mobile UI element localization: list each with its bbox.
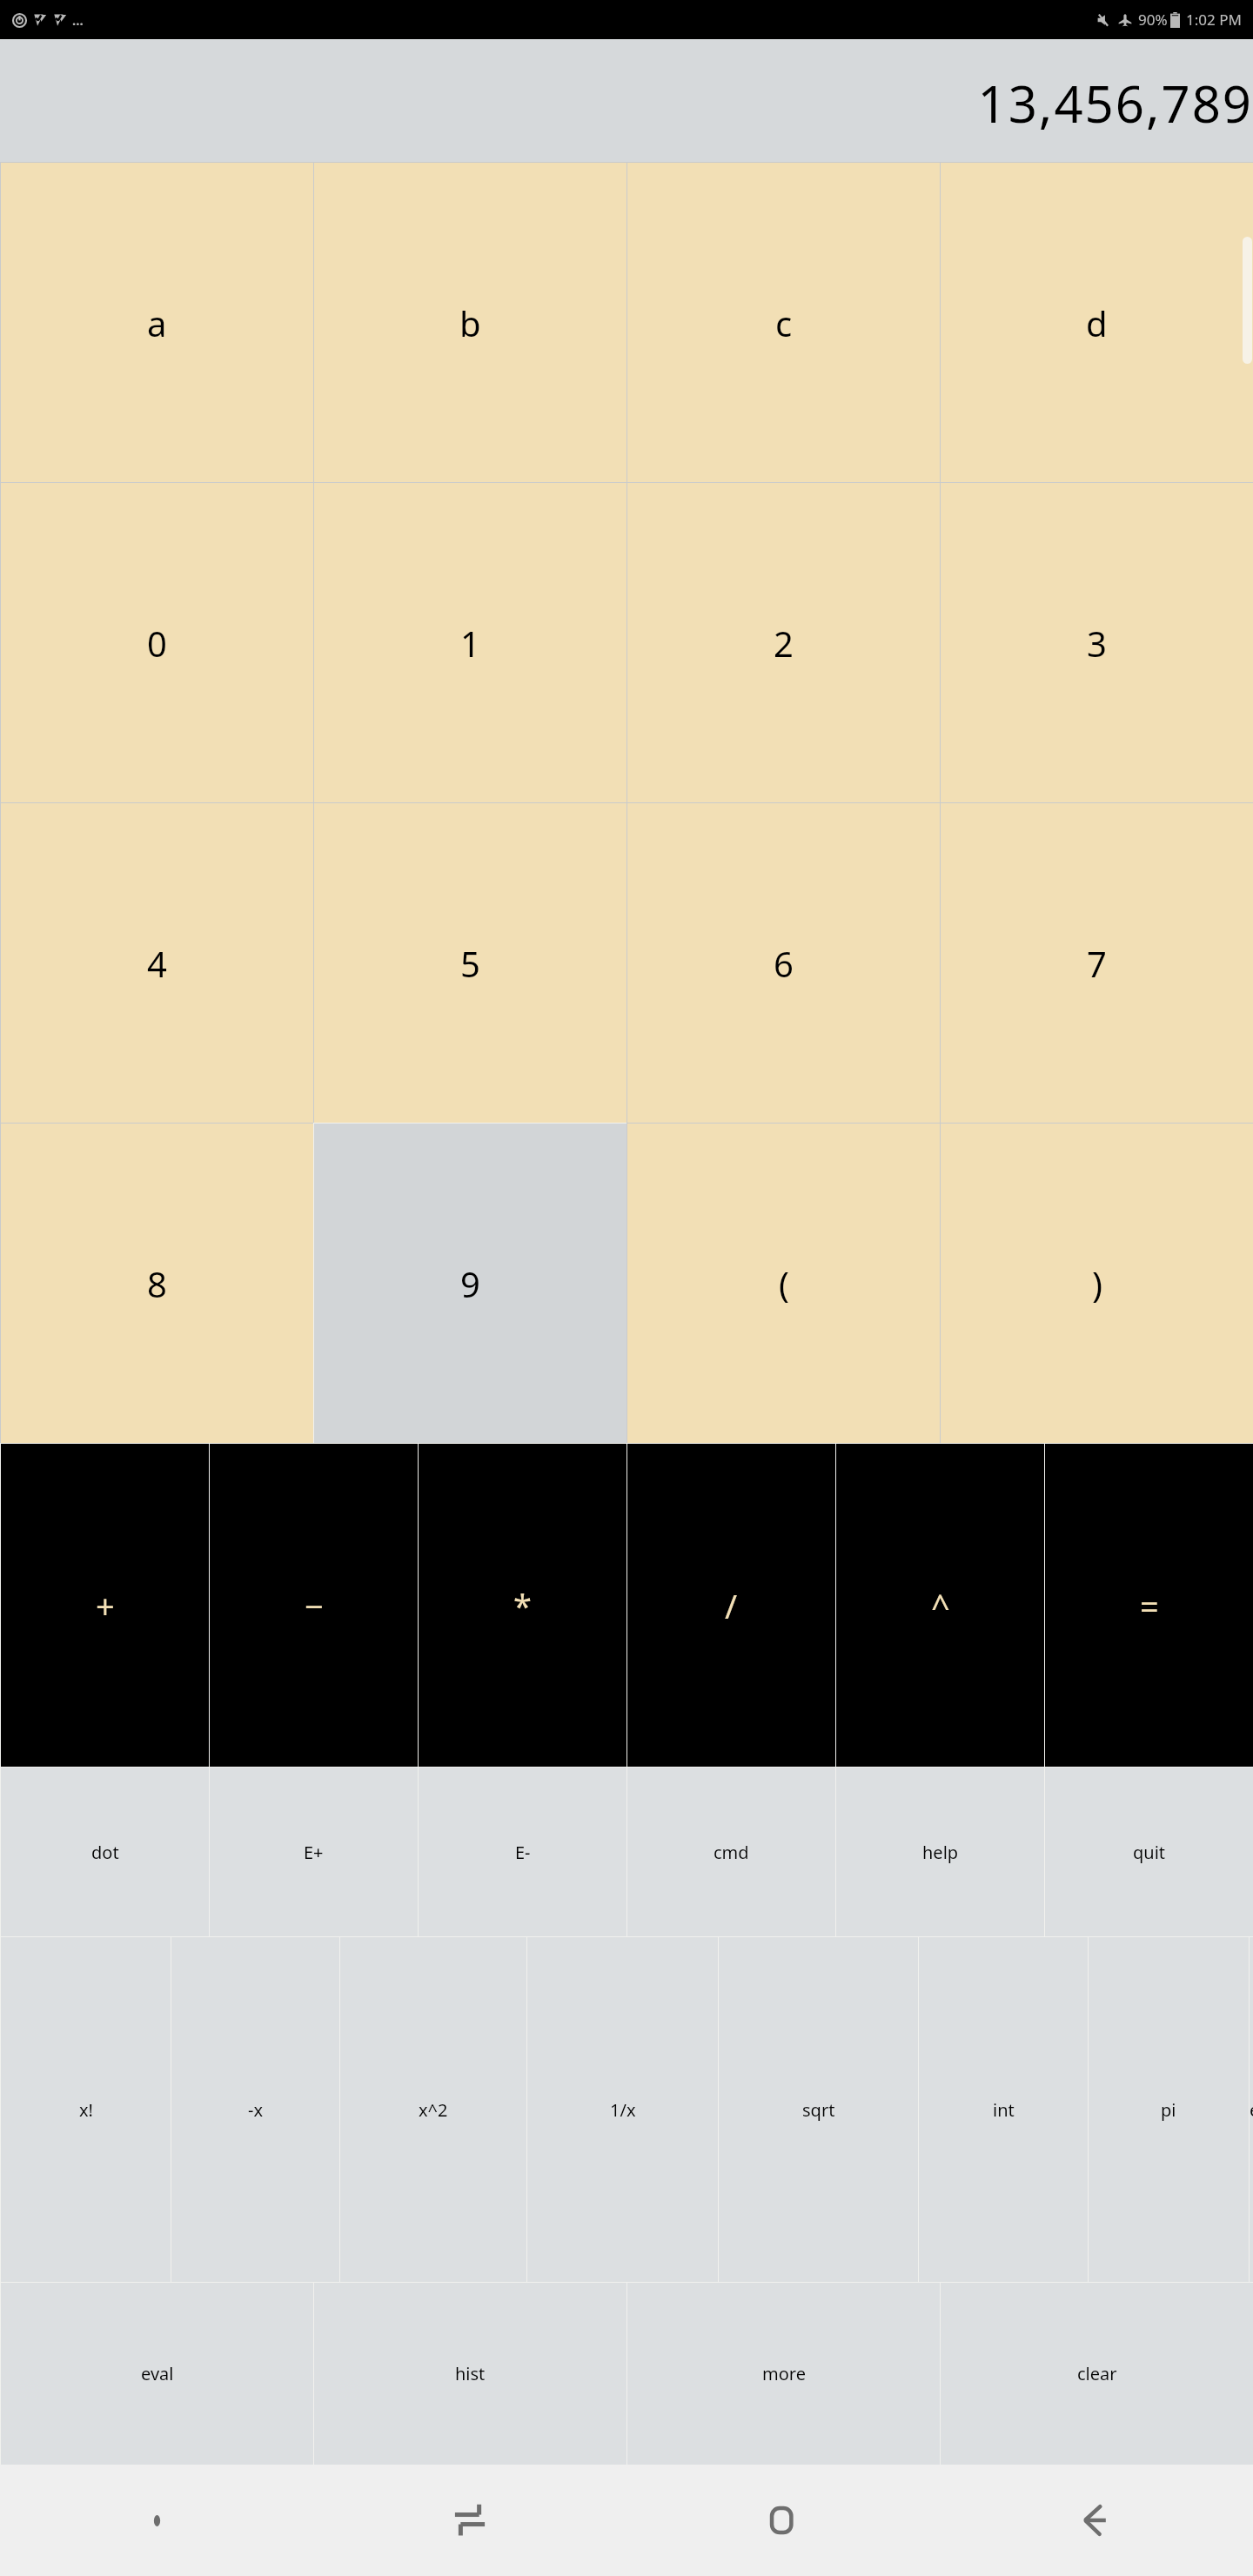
button[interactable]: * [419, 1444, 626, 1767]
button[interactable]: help [836, 1768, 1044, 1936]
staticText: more [762, 2362, 806, 2385]
button[interactable]: e [1250, 1937, 1253, 2282]
staticText: clear [1077, 2362, 1117, 2385]
staticText: 1 [460, 620, 480, 667]
button[interactable]: − [210, 1444, 418, 1767]
staticText: 13,456,789 [977, 69, 1253, 138]
staticText: 90% [1138, 10, 1168, 30]
staticText: help [922, 1841, 959, 1864]
button[interactable]: ( [627, 1124, 940, 1443]
staticText: ^ [931, 1583, 950, 1628]
staticText: − [305, 1583, 324, 1628]
button[interactable]: 6 [627, 803, 940, 1123]
staticText: ... [72, 11, 84, 29]
staticText: x! [79, 2098, 93, 2122]
staticText: 1:02 PM [1186, 10, 1242, 30]
staticText: x^2 [419, 2098, 448, 2122]
staticText: 9 [460, 1260, 480, 1307]
button[interactable]: pi [1089, 1937, 1249, 2282]
staticText: 3 [1087, 620, 1107, 667]
staticText: 4 [147, 940, 167, 987]
staticText: 2 [774, 620, 794, 667]
button[interactable]: ^ [836, 1444, 1044, 1767]
staticText: int [993, 2098, 1015, 2122]
button[interactable]: 1/x [527, 1937, 718, 2282]
button[interactable]: = [1045, 1444, 1253, 1767]
staticText: hist [455, 2362, 486, 2385]
button[interactable]: 3 [941, 483, 1253, 802]
button[interactable]: 9 [314, 1124, 626, 1443]
button[interactable]: / [627, 1444, 835, 1767]
button[interactable]: hist [314, 2283, 626, 2465]
button[interactable]: dot [1, 1768, 209, 1936]
staticText: c [775, 299, 793, 346]
staticText: b [459, 299, 481, 346]
staticText: / [725, 1583, 738, 1628]
button[interactable]: eval [1, 2283, 313, 2465]
staticText: E+ [304, 1841, 324, 1864]
button[interactable]: 5 [314, 803, 626, 1123]
staticText: E- [515, 1841, 531, 1864]
staticText: 1/x [610, 2098, 636, 2122]
button[interactable]: cmd [627, 1768, 835, 1936]
staticText: 7 [1087, 940, 1107, 987]
button[interactable]: -x [171, 1937, 339, 2282]
button[interactable]: E- [419, 1768, 626, 1936]
button[interactable]: 1 [314, 483, 626, 802]
button[interactable]: ) [941, 1124, 1253, 1443]
staticText: = [1140, 1583, 1159, 1628]
staticText: ( [779, 1260, 789, 1307]
staticText: quit [1133, 1841, 1166, 1864]
button[interactable]: 13,456,789 [0, 39, 1253, 162]
staticText: * [513, 1583, 532, 1628]
staticText: dot [91, 1841, 119, 1864]
staticText: cmd [714, 1841, 749, 1864]
staticText: 5 [460, 940, 480, 987]
staticText: sqrt [802, 2098, 835, 2122]
staticText: 0 [147, 620, 167, 667]
staticText: 8 [147, 1260, 167, 1307]
button[interactable]: x! [1, 1937, 171, 2282]
staticText: a [147, 299, 167, 346]
staticText: ) [1092, 1260, 1102, 1307]
staticText: -x [248, 2098, 264, 2122]
button[interactable]: 0 [1, 483, 313, 802]
button[interactable]: c [627, 163, 940, 482]
button[interactable]: Back [940, 2465, 1253, 2576]
button[interactable]: quit [1045, 1768, 1253, 1936]
staticText: 6 [774, 940, 794, 987]
staticText: pi [1161, 2098, 1176, 2122]
button[interactable]: sqrt [719, 1937, 918, 2282]
button[interactable]: 2 [627, 483, 940, 802]
staticText: e [1250, 2098, 1253, 2122]
button[interactable]: a [1, 163, 313, 482]
button[interactable]: E+ [210, 1768, 418, 1936]
button[interactable]: 8 [1, 1124, 313, 1443]
button[interactable]: x^2 [340, 1937, 526, 2282]
button[interactable]: Home [626, 2465, 940, 2576]
staticText: + [96, 1583, 115, 1628]
button[interactable]: 4 [1, 803, 313, 1123]
button[interactable]: clear [941, 2283, 1253, 2465]
button[interactable]: Recents [313, 2465, 626, 2576]
staticText: d [1086, 299, 1108, 346]
button[interactable]: 7 [941, 803, 1253, 1123]
button[interactable]: b [314, 163, 626, 482]
button[interactable]: Keyboard indicator [0, 2465, 313, 2576]
button[interactable]: d [941, 163, 1253, 482]
button[interactable]: int [919, 1937, 1088, 2282]
staticText: eval [141, 2362, 174, 2385]
button[interactable]: + [1, 1444, 209, 1767]
button[interactable]: more [627, 2283, 940, 2465]
